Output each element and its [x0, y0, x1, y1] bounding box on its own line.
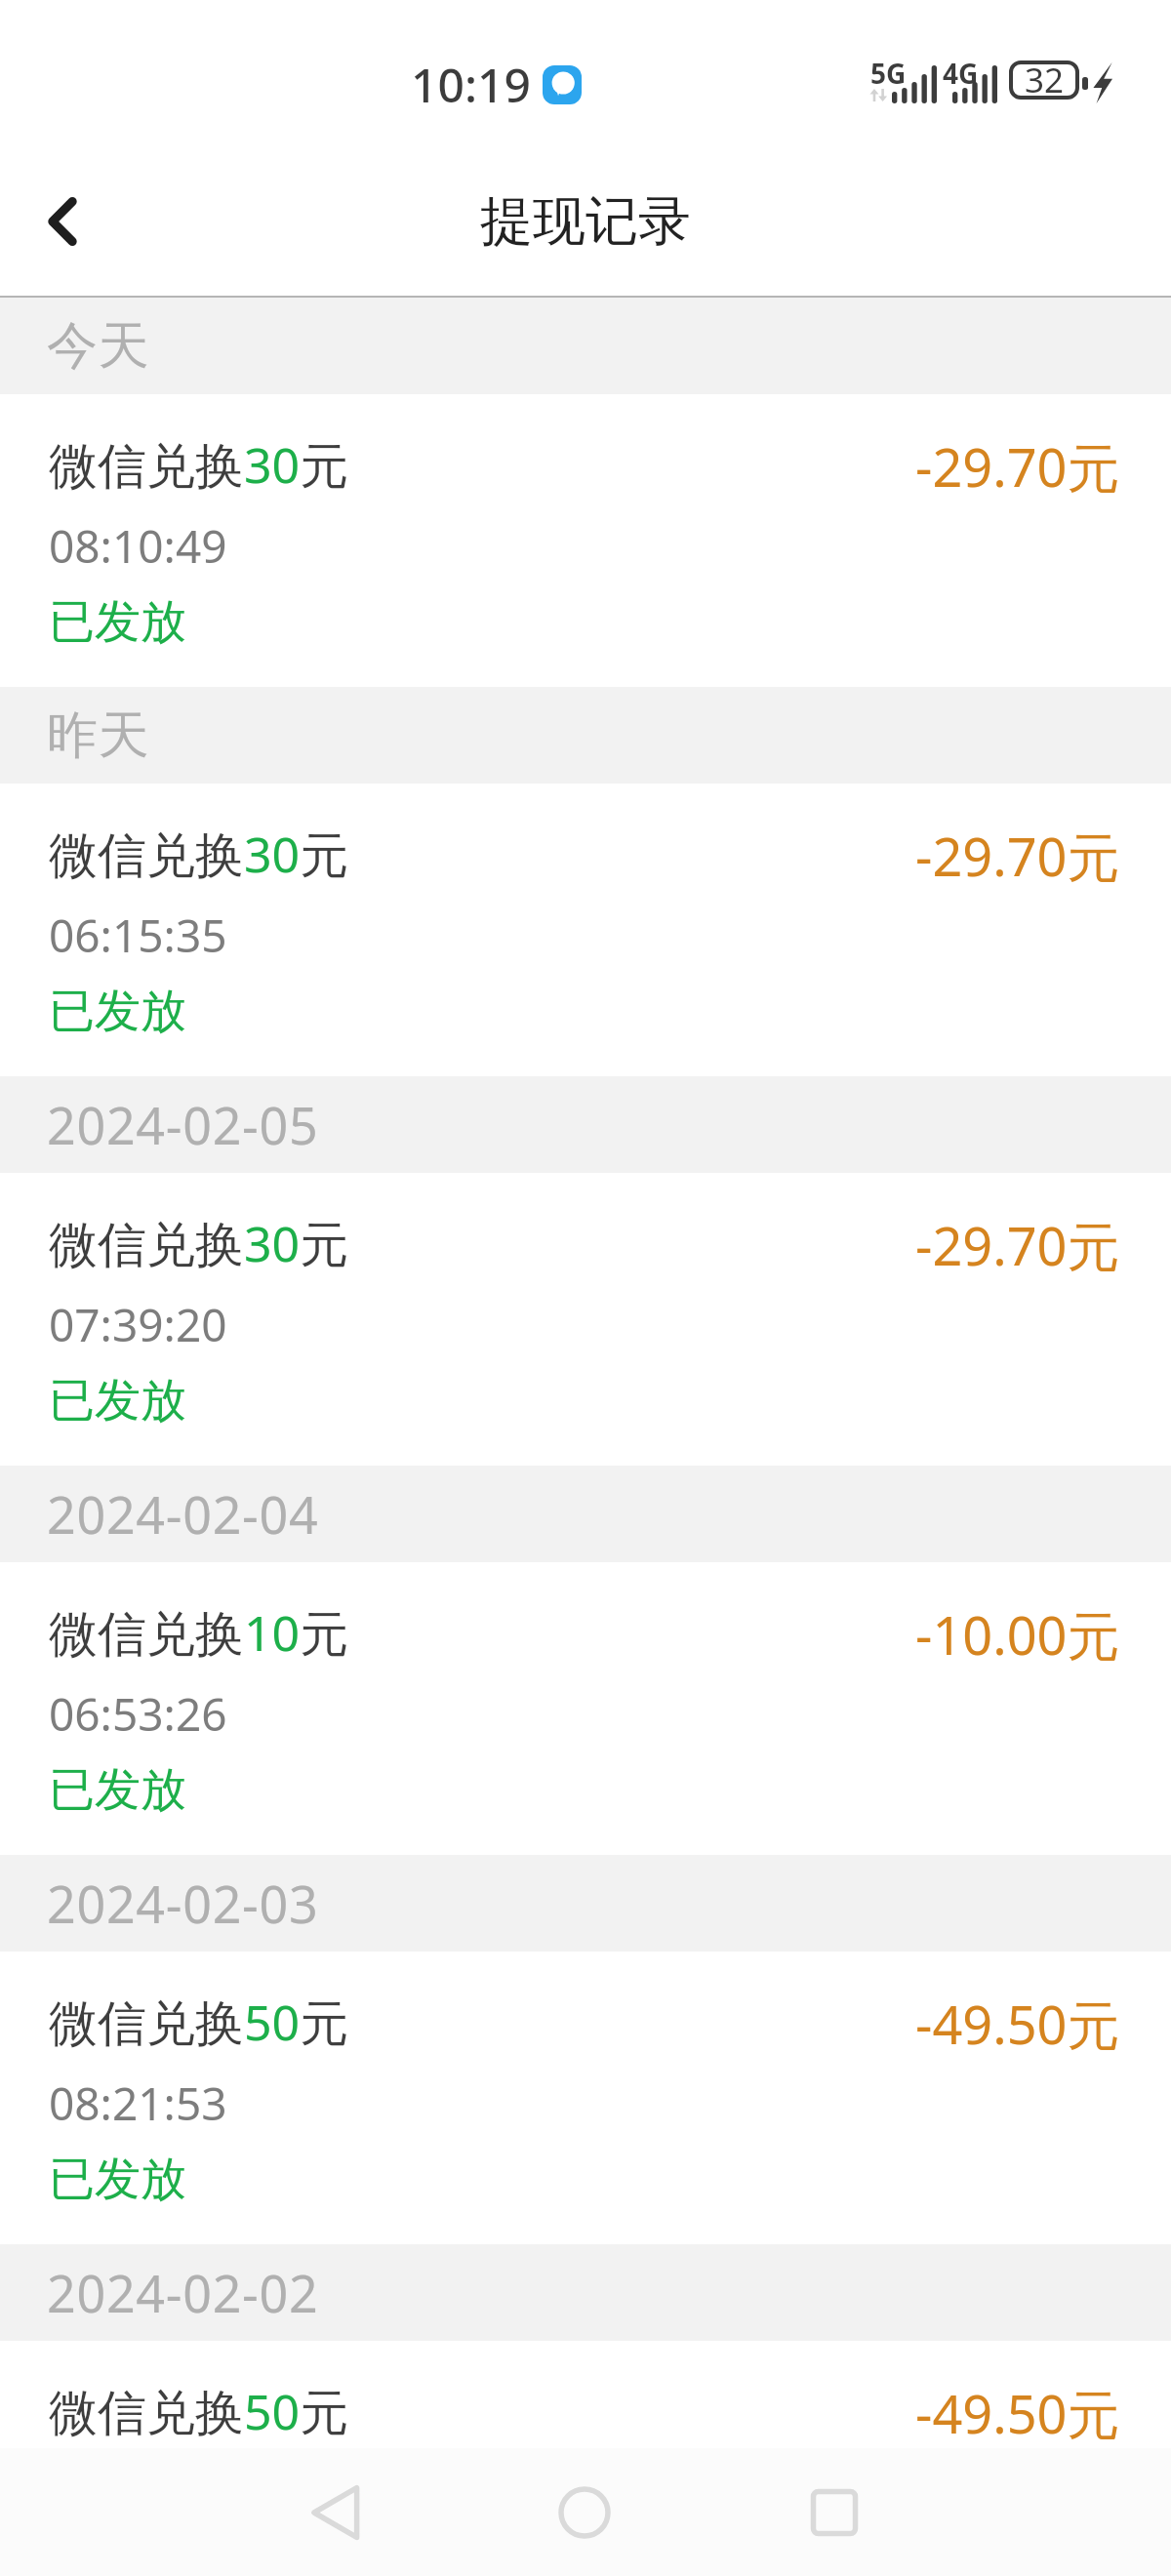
staticText: -49.50元: [915, 2377, 1120, 2448]
staticText: 已发放: [49, 593, 186, 651]
button[interactable]: Back: [20, 179, 105, 264]
staticText: -29.70元: [915, 430, 1120, 503]
staticText: 2024-02-03: [47, 1869, 319, 1938]
staticText: 5G: [870, 55, 907, 92]
staticText: 昨天: [47, 704, 150, 768]
staticText: 已发放: [49, 1761, 186, 1819]
button[interactable]: Home: [526, 2454, 643, 2571]
staticText: 32: [1025, 57, 1065, 103]
staticText: 提现记录: [480, 188, 691, 255]
staticText: 10:19: [411, 53, 531, 116]
button[interactable]: 微信兑换30元: [0, 784, 1171, 1076]
staticText: 已发放: [49, 983, 186, 1040]
staticText: -10.00元: [915, 1598, 1120, 1670]
staticText: 08:21:53: [49, 2073, 227, 2134]
button[interactable]: 微信兑换50元: [0, 2341, 1171, 2448]
staticText: -29.70元: [915, 820, 1120, 892]
staticText: -29.70元: [915, 1209, 1120, 1281]
staticText: 06:53:26: [49, 1683, 227, 1745]
staticText: 2024-02-02: [47, 2258, 319, 2327]
staticText: 微信兑换50元: [49, 2378, 349, 2444]
staticText: 微信兑换30元: [49, 1210, 349, 1276]
staticText: 07:39:20: [49, 1294, 227, 1355]
staticText: 微信兑换10元: [49, 1599, 349, 1666]
button[interactable]: Navigate back: [277, 2454, 394, 2571]
staticText: 2024-02-05: [47, 1090, 319, 1159]
staticText: 今天: [47, 314, 150, 379]
button[interactable]: 微信兑换30元: [0, 1173, 1171, 1466]
staticText: 08:10:49: [49, 515, 227, 577]
staticText: 2024-02-04: [47, 1479, 319, 1549]
staticText: 4G: [943, 55, 979, 92]
button[interactable]: 微信兑换30元: [0, 394, 1171, 687]
staticText: 微信兑换30元: [49, 821, 349, 887]
staticText: 微信兑换50元: [49, 1989, 349, 2055]
staticText: 已发放: [49, 2151, 186, 2208]
staticText: 微信兑换30元: [49, 431, 349, 498]
button[interactable]: Recents: [776, 2454, 893, 2571]
staticText: -49.50元: [915, 1988, 1120, 2060]
staticText: 06:15:35: [49, 905, 227, 966]
button[interactable]: 微信兑换50元: [0, 1952, 1171, 2244]
button[interactable]: 微信兑换10元: [0, 1562, 1171, 1855]
staticText: 已发放: [49, 1372, 186, 1429]
